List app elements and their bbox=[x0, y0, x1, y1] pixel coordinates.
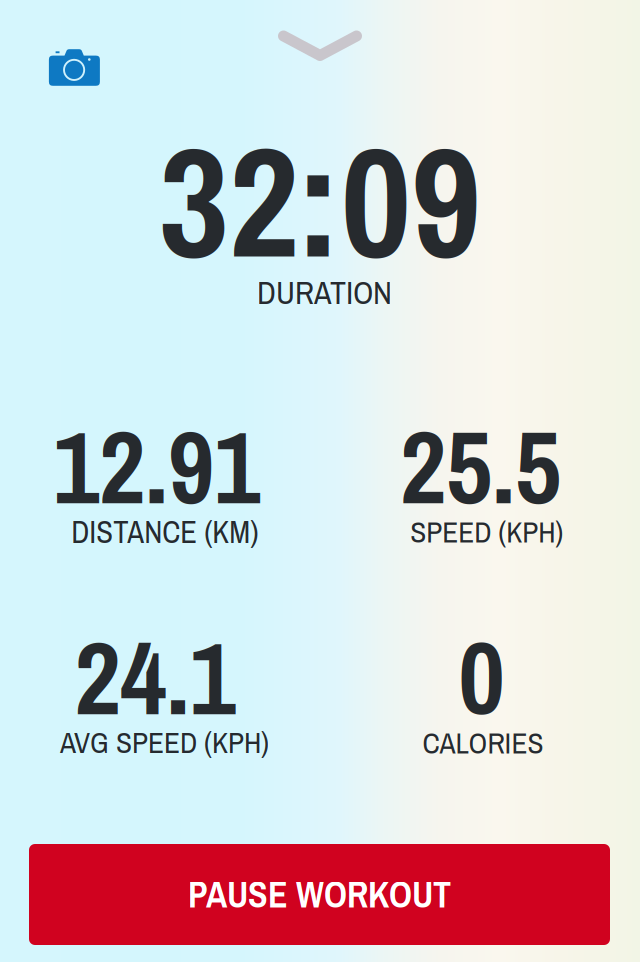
button[interactable]: Collapse workout bbox=[264, 14, 376, 78]
button[interactable]: PAUSE WORKOUT bbox=[29, 844, 610, 945]
staticText: AVG SPEED (KPH) bbox=[60, 723, 269, 762]
staticText: 0 bbox=[458, 609, 504, 745]
staticText: 32:09 bbox=[159, 98, 481, 304]
staticText: CALORIES bbox=[422, 723, 543, 763]
button[interactable]: Camera bbox=[38, 36, 110, 98]
staticText: 24.1 bbox=[74, 609, 235, 746]
staticText: SPEED (KPH) bbox=[410, 512, 563, 552]
staticText: DISTANCE (KM) bbox=[71, 511, 258, 553]
staticText: DURATION bbox=[257, 271, 392, 314]
staticText: 25.5 bbox=[400, 398, 561, 535]
staticText: 12.91 bbox=[53, 398, 260, 535]
staticText: PAUSE WORKOUT bbox=[188, 870, 451, 919]
